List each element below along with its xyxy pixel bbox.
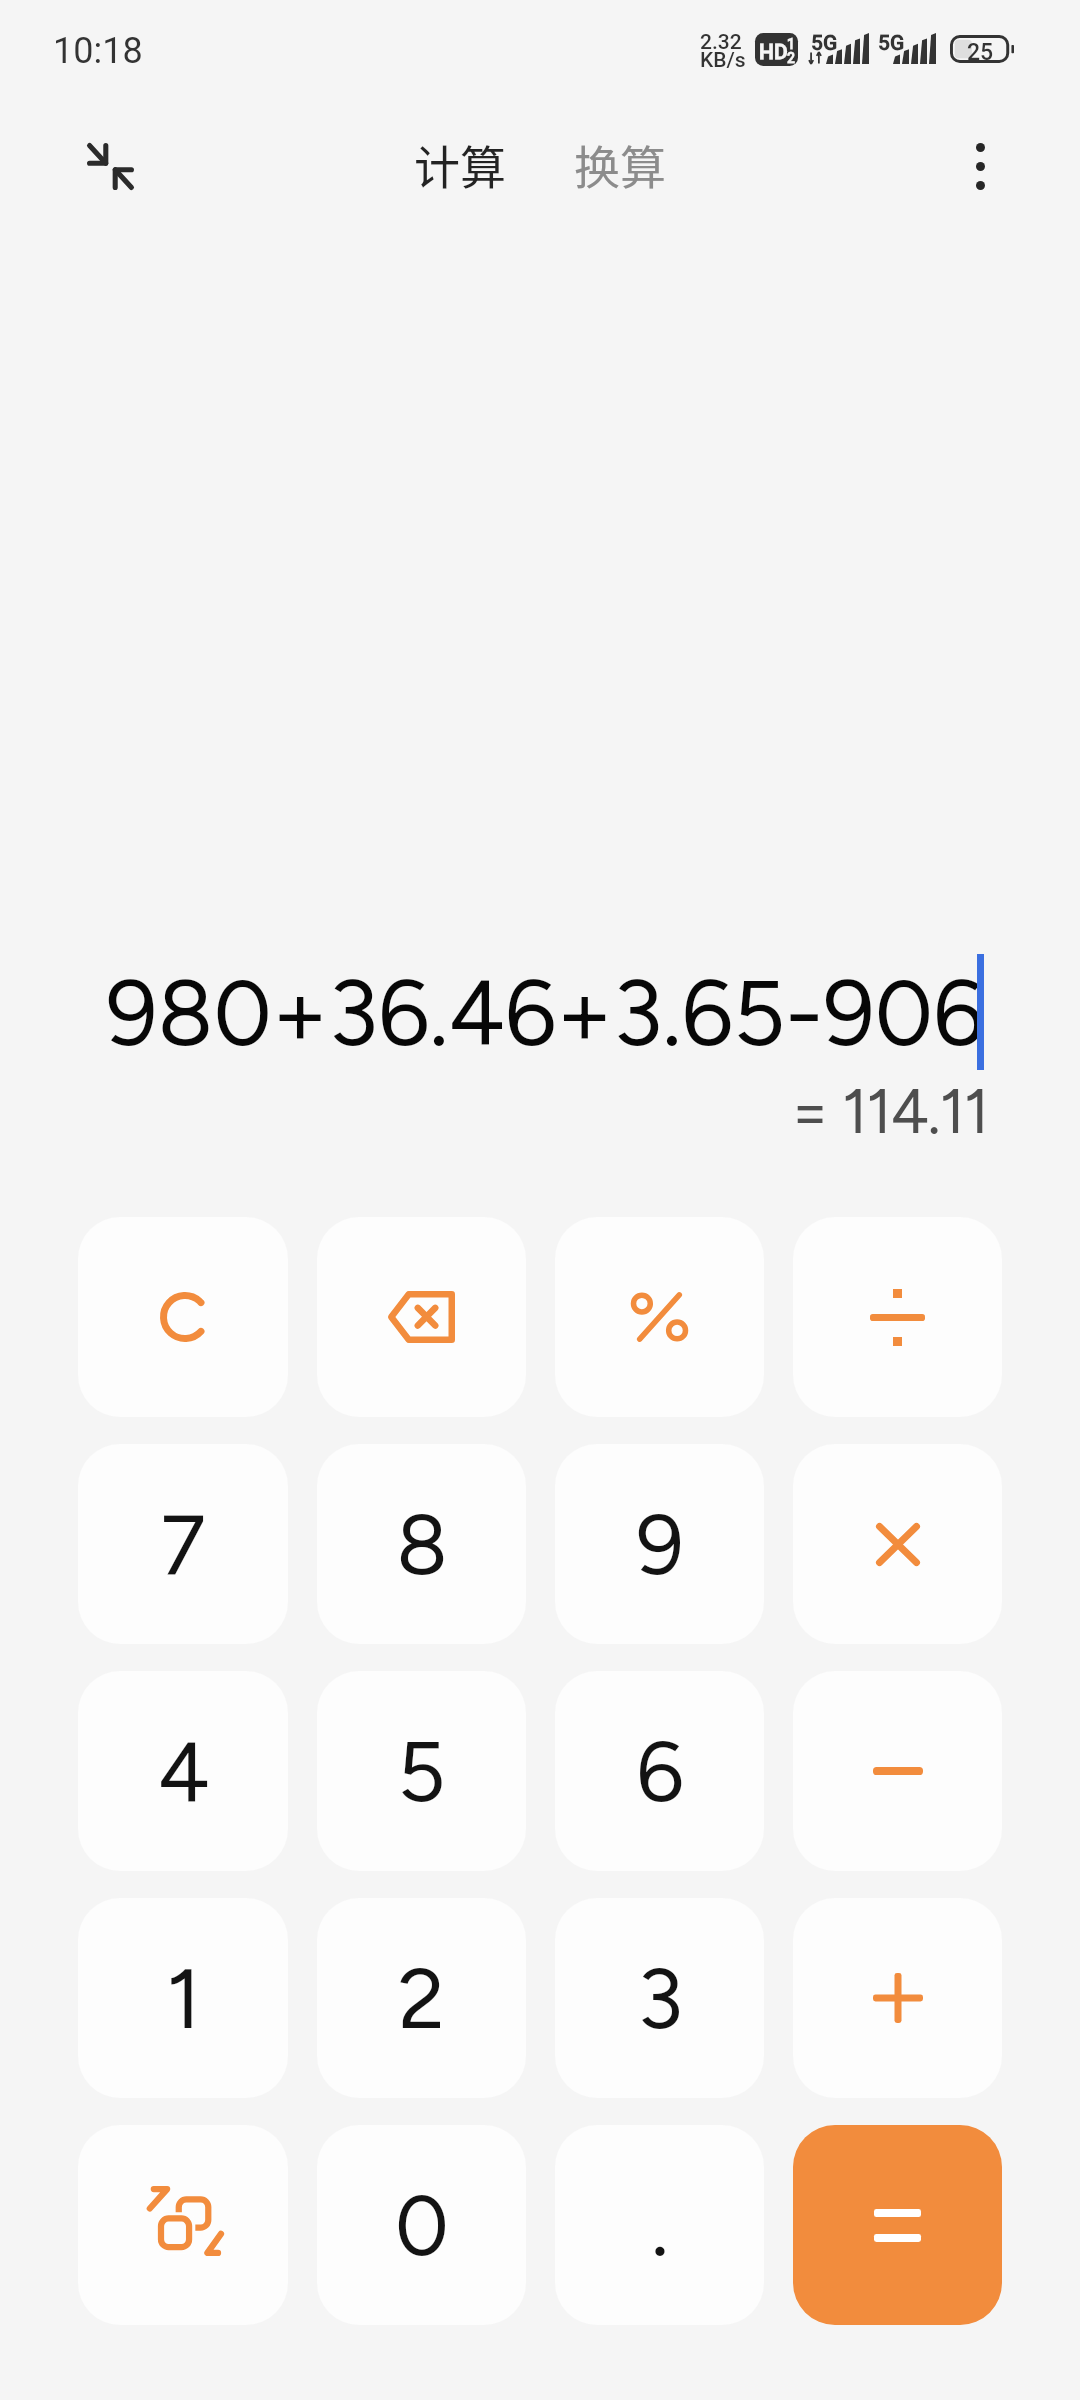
button[interactable]: Collapse <box>63 119 157 213</box>
staticText: 5 <box>397 1721 446 1822</box>
button[interactable]: Delete <box>317 1217 526 1417</box>
staticText: 5G <box>811 31 838 56</box>
button[interactable]: 7 <box>78 1444 288 1644</box>
staticText: 4 <box>157 1721 210 1822</box>
staticText: = 114.11 <box>0 1074 988 1148</box>
staticText: 0 <box>395 2175 449 2276</box>
staticText: 980+36.46+3.65-906 <box>106 959 985 1068</box>
button[interactable]: Clear <box>78 1217 288 1417</box>
button[interactable]: 5 <box>317 1671 526 1871</box>
staticText: 7 <box>160 1494 206 1595</box>
button[interactable]: Multiply <box>793 1444 1002 1644</box>
button[interactable]: Divide <box>793 1217 1002 1417</box>
button[interactable]: 9 <box>555 1444 764 1644</box>
button[interactable]: Percent <box>555 1217 764 1417</box>
button[interactable]: Decimal point <box>555 2125 764 2325</box>
button[interactable]: 计算 <box>400 121 520 208</box>
button[interactable]: Plus <box>793 1898 1002 2098</box>
button[interactable]: 换算 <box>560 121 680 208</box>
staticText: 8 <box>396 1494 448 1595</box>
staticText: 2 <box>787 50 795 66</box>
staticText: 1 <box>166 1948 201 2049</box>
button[interactable]: Equals <box>793 2125 1002 2325</box>
button[interactable]: 8 <box>317 1444 526 1644</box>
staticText: 25 <box>967 39 994 66</box>
staticText: 3 <box>637 1948 683 2049</box>
staticText: 5G <box>878 31 905 56</box>
button[interactable]: More options <box>933 119 1027 213</box>
button[interactable]: Minus <box>793 1671 1002 1871</box>
staticText: KB/s <box>700 48 746 73</box>
button[interactable]: 6 <box>555 1671 764 1871</box>
button[interactable]: 2 <box>317 1898 526 2098</box>
staticText: 计算 <box>414 131 506 198</box>
button[interactable]: 3 <box>555 1898 764 2098</box>
button[interactable]: 4 <box>78 1671 288 1871</box>
staticText: 2 <box>398 1948 445 2049</box>
staticText: 10:18 <box>53 30 143 72</box>
staticText: 1 <box>787 36 795 52</box>
staticText: 2.32 <box>700 30 742 55</box>
button[interactable]: Scientific calculator <box>78 2125 288 2325</box>
staticText: 9 <box>636 1494 684 1595</box>
staticText: HD <box>759 40 788 65</box>
staticText: 6 <box>636 1721 684 1822</box>
button[interactable]: 0 <box>317 2125 526 2325</box>
button[interactable]: 1 <box>78 1898 288 2098</box>
staticText: 换算 <box>574 131 666 198</box>
staticText: . <box>651 2175 669 2276</box>
